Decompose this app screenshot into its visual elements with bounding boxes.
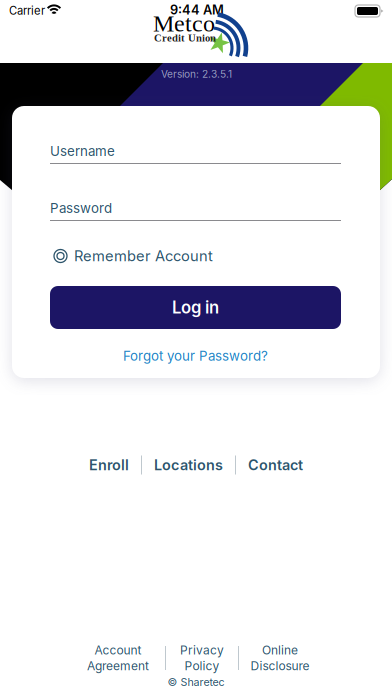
staticText: © Sharetec [167, 675, 224, 688]
button[interactable]: Locations [154, 452, 223, 478]
staticText: Version: 2.3.5.1 [161, 68, 232, 80]
button[interactable]: Forgot your Password? [50, 345, 341, 367]
button[interactable]: Enroll [89, 452, 129, 478]
staticText: Locations [154, 456, 223, 474]
button[interactable]: Account [83, 644, 153, 672]
staticText: 9:44 AM [170, 2, 224, 17]
staticText: Remember Account [74, 247, 213, 265]
button[interactable]: Log in [50, 286, 341, 329]
staticText: Account [94, 643, 141, 657]
staticText: Disclosure [250, 658, 309, 673]
staticText: Carrier [9, 4, 45, 18]
staticText: Password [50, 200, 112, 216]
button[interactable]: Online [251, 644, 309, 672]
staticText: Enroll [89, 456, 129, 474]
button[interactable]: Privacy [178, 644, 226, 672]
button[interactable]: Remember Account [53, 245, 228, 267]
staticText: Username [50, 143, 115, 159]
staticText: Log in [172, 297, 219, 318]
staticText: Privacy [180, 643, 224, 657]
staticText: Agreement [87, 658, 149, 673]
staticText: Metco [153, 10, 215, 37]
staticText: Contact [248, 456, 303, 474]
button[interactable]: Contact [248, 452, 303, 478]
staticText: Credit Union [154, 32, 216, 44]
staticText: Forgot your Password? [123, 348, 268, 364]
staticText: Policy [184, 658, 219, 673]
staticText: Online [262, 643, 298, 657]
